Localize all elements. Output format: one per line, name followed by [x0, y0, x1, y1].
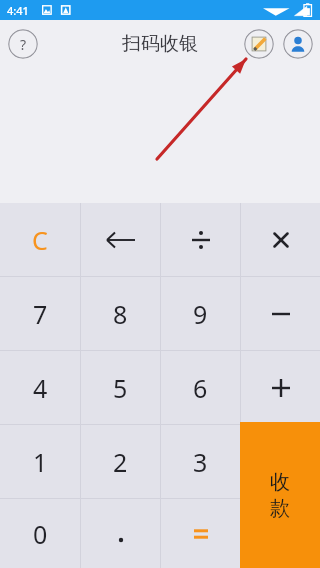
button[interactable] [161, 499, 240, 568]
staticText: 收 款 [270, 470, 290, 521]
button[interactable] [241, 203, 320, 276]
staticText: 9 [193, 297, 208, 331]
button[interactable]: Account [283, 29, 313, 59]
staticText: ? [20, 35, 27, 54]
button[interactable] [81, 203, 160, 276]
staticText: 3 [193, 445, 208, 479]
button[interactable]: key [241, 425, 320, 498]
button[interactable]: C [0, 203, 80, 276]
button[interactable]: 9 [161, 277, 240, 350]
button[interactable] [241, 277, 320, 350]
staticText: 8 [113, 297, 128, 331]
staticText: 5 [113, 371, 128, 405]
button[interactable] [81, 499, 160, 568]
button[interactable]: Help [8, 29, 38, 59]
staticText: 4:41 [7, 3, 29, 18]
button[interactable] [241, 351, 320, 424]
button[interactable]: 8 [81, 277, 160, 350]
staticText: 6 [193, 371, 208, 405]
staticText: 1 [33, 445, 48, 479]
button[interactable]: 4 [0, 351, 80, 424]
button[interactable]: 2 [81, 425, 160, 498]
button[interactable]: 5 [81, 351, 160, 424]
staticText: 扫码收银 [122, 32, 198, 56]
button[interactable]: 收 款 [240, 422, 320, 568]
staticText: 4 [33, 371, 48, 405]
button[interactable]: 0 [0, 499, 80, 568]
staticText: 0 [33, 517, 48, 551]
staticText: C [32, 223, 48, 257]
button[interactable]: 6 [161, 351, 240, 424]
button[interactable]: 1 [0, 425, 80, 498]
button[interactable]: 7 [0, 277, 80, 350]
button[interactable] [161, 203, 240, 276]
button[interactable]: Edit [244, 29, 274, 59]
staticText: 7 [33, 297, 48, 331]
staticText: 2 [113, 445, 128, 479]
button[interactable]: 3 [161, 425, 240, 498]
button[interactable]: key [241, 499, 320, 568]
